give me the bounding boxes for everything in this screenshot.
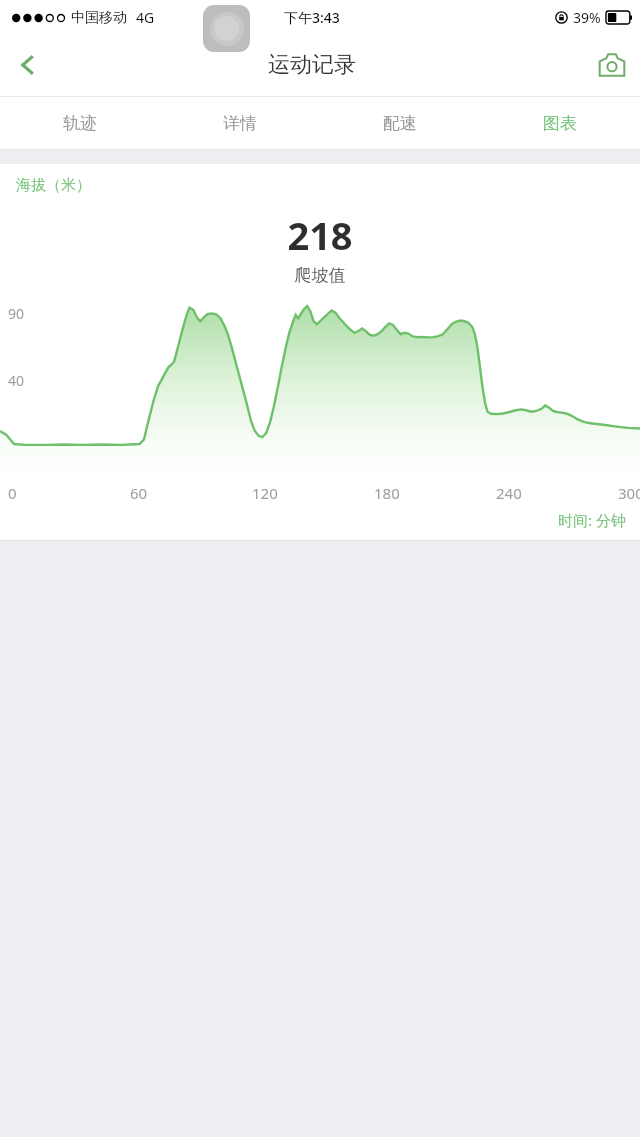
staticText: 240 (496, 483, 522, 503)
button[interactable]: 配速 (320, 97, 480, 149)
button[interactable]: 拍照 (584, 37, 640, 93)
staticText: 120 (252, 483, 278, 503)
staticText: 60 (130, 483, 148, 503)
staticText: 4G (136, 8, 155, 27)
staticText: 39% (573, 8, 601, 27)
staticText: 下午3:43 (284, 8, 340, 27)
staticText: 40 (8, 371, 25, 390)
button[interactable]: 轨迹 (0, 97, 160, 149)
staticText: 中国移动 (71, 9, 127, 27)
staticText: 0 (8, 483, 17, 503)
staticText: 海拔（米） (16, 176, 91, 195)
staticText: 配速 (383, 113, 417, 134)
staticText: 300 (618, 483, 640, 503)
staticText: 爬坡值 (0, 265, 640, 286)
staticText: 详情 (223, 113, 257, 134)
staticText: 180 (374, 483, 400, 503)
staticText: 运动记录 (268, 51, 356, 79)
staticText: 图表 (543, 113, 577, 134)
staticText: 90 (8, 304, 25, 323)
staticText: 218 (0, 209, 640, 261)
button[interactable]: 返回 (0, 37, 56, 93)
staticText: 时间: 分钟 (0, 510, 626, 530)
button[interactable]: 详情 (160, 97, 320, 149)
staticText: 轨迹 (63, 113, 97, 134)
button[interactable]: 图表 (480, 97, 640, 149)
